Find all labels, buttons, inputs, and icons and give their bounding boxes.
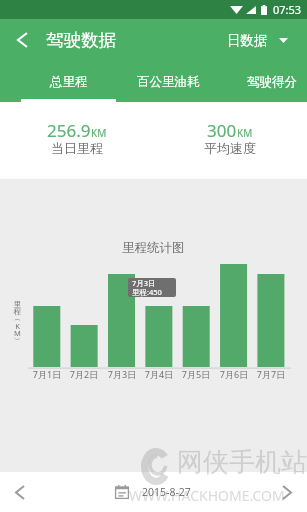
- staticText: KM: [237, 126, 253, 140]
- staticText: 7月2日: [66, 368, 102, 380]
- staticText: M: [13, 328, 22, 338]
- staticText: WWW.HACKHOME.COM: [129, 486, 285, 505]
- staticText: 平均速度: [204, 140, 256, 156]
- button[interactable]: Previous day: [5, 477, 35, 507]
- staticText: 300: [207, 119, 237, 142]
- staticText: 百公里油耗: [137, 74, 200, 90]
- staticText: 里: [13, 300, 22, 309]
- staticText: 里程:450: [132, 287, 162, 297]
- staticText: KM: [91, 126, 107, 140]
- staticText: 日数据: [227, 32, 268, 49]
- staticText: 07:53: [273, 2, 302, 17]
- button[interactable]: 2015-8-27: [115, 476, 191, 508]
- staticText: K: [13, 321, 22, 331]
- staticText: 7月3日: [104, 368, 140, 380]
- staticText: 里程统计图: [122, 240, 185, 256]
- button[interactable]: Back: [7, 25, 37, 55]
- staticText: 网侠手机站: [177, 446, 307, 479]
- staticText: 7月7日: [253, 368, 289, 380]
- staticText: 驾驶数据: [46, 29, 116, 51]
- staticText: ︵: [13, 314, 22, 323]
- staticText: 当日里程: [51, 140, 103, 156]
- staticText: ︶: [13, 335, 22, 344]
- staticText: 256.9: [47, 119, 91, 142]
- staticText: 总里程: [50, 74, 88, 90]
- staticText: 7月6日: [216, 368, 252, 380]
- staticText: 7月5日: [178, 368, 214, 380]
- staticText: 程: [13, 307, 22, 316]
- button[interactable]: Next day: [272, 477, 302, 507]
- staticText: 驾驶得分: [247, 74, 297, 90]
- button[interactable]: 日数据: [227, 32, 288, 49]
- staticText: 2015-8-27: [142, 485, 191, 499]
- staticText: 7月3日: [132, 278, 156, 288]
- staticText: 7月4日: [141, 368, 177, 380]
- button[interactable]: 驾驶得分: [220, 61, 307, 102]
- button[interactable]: 百公里油耗: [116, 61, 220, 102]
- button[interactable]: 总里程: [21, 61, 116, 102]
- staticText: 7月1日: [29, 368, 65, 380]
